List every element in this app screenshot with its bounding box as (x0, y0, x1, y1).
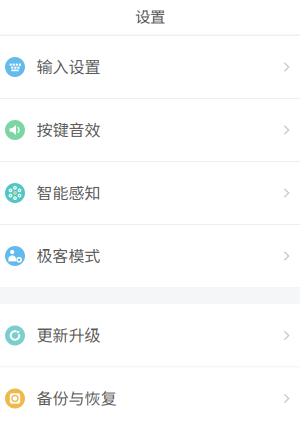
staticText: 更新升级 (37, 323, 101, 346)
staticText: 智能感知 (37, 180, 101, 204)
button[interactable]: 按键音效 (0, 99, 300, 161)
staticText: 极客模式 (37, 243, 101, 267)
button[interactable]: 输入设置 (0, 36, 300, 98)
button[interactable]: 极客模式 (0, 225, 300, 287)
button[interactable]: 备份与恢复 (0, 367, 300, 421)
staticText: 备份与恢复 (37, 386, 117, 409)
button[interactable]: 智能感知 (0, 162, 300, 224)
staticText: 按键音效 (37, 117, 101, 141)
staticText: 输入设置 (37, 54, 101, 78)
button[interactable]: 更新升级 (0, 304, 300, 366)
staticText: 设置 (135, 5, 165, 27)
